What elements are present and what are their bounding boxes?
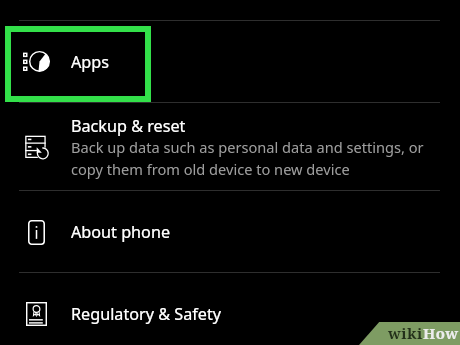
other: About phone (28, 220, 45, 245)
button[interactable]: Apps (0, 26, 460, 102)
button[interactable]: About phone (0, 191, 460, 272)
other: Regulatory and Safety (26, 302, 47, 326)
button[interactable]: Regulatory and Safety (0, 273, 460, 345)
other: Backup and reset (24, 134, 50, 160)
other: Apps (22, 52, 50, 78)
staticText: About phone (71, 221, 171, 243)
staticText: How (423, 323, 459, 343)
staticText: Back up data such as personal data and s… (71, 137, 424, 179)
staticText: Backup & reset (71, 115, 186, 137)
staticText: Regulatory & Safety (71, 303, 222, 325)
button[interactable]: Backup and reset (0, 103, 460, 190)
staticText: Apps (71, 51, 110, 73)
staticText: wiki (388, 323, 423, 343)
